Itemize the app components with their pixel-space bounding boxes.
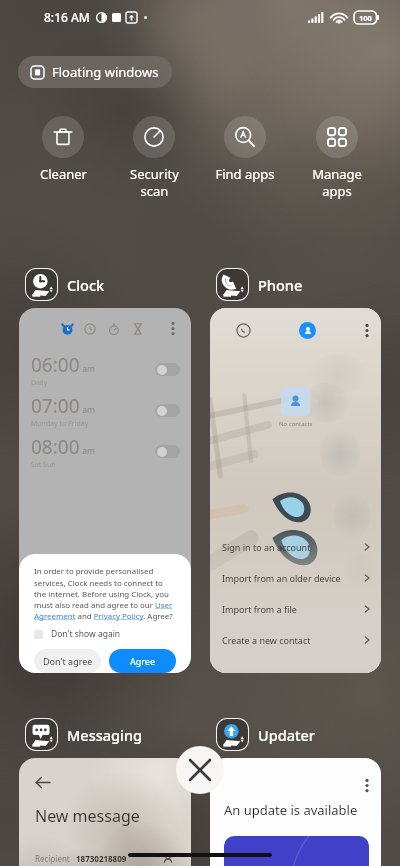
staticText: No contacts [279, 420, 313, 428]
staticText: Security scan [130, 165, 179, 200]
staticText: Monday to Friday [31, 419, 89, 429]
button[interactable]: Find apps [204, 116, 286, 183]
staticText: An update is available [224, 801, 358, 819]
staticText: Find apps [215, 165, 275, 183]
staticText: Updater [258, 725, 315, 745]
button[interactable]: 07:00 [19, 390, 191, 431]
button[interactable]: 06:00 [19, 349, 191, 390]
button[interactable]: Import from an older device [210, 562, 381, 593]
staticText: Recipient [35, 853, 70, 864]
staticText: Don't agree [43, 655, 93, 667]
button[interactable] [155, 445, 180, 458]
button[interactable]: 06:00 [19, 308, 191, 673]
button[interactable]: Sign in to an account [210, 531, 381, 562]
staticText: 08:00 [31, 434, 80, 460]
staticText: New message [35, 805, 140, 827]
staticText: 100 [359, 13, 372, 23]
staticText: am [80, 445, 95, 457]
button[interactable]: Don't agree [34, 649, 101, 673]
staticText: 18730218809 [76, 853, 127, 864]
staticText: Sat Sun [31, 460, 56, 470]
staticText: Import from an older device [222, 572, 341, 584]
button[interactable]: An update is available [210, 758, 381, 866]
button[interactable] [155, 404, 180, 417]
staticText: Import from a file [222, 603, 297, 615]
staticText: Daily [31, 378, 48, 388]
staticText: Clock [67, 275, 105, 295]
staticText: Create a new contact [222, 634, 311, 646]
button[interactable]: Floating windows [18, 56, 172, 88]
button[interactable]: Updater [216, 718, 315, 751]
staticText: Floating windows [52, 63, 159, 81]
button[interactable]: Close all [176, 746, 224, 794]
staticText: Messaging [67, 725, 143, 745]
button[interactable]: Phone [216, 268, 303, 301]
staticText: Sign in to an account [222, 541, 311, 553]
staticText: 07:00 [31, 393, 80, 419]
button[interactable]: Cleaner [22, 116, 104, 183]
button[interactable]: No contacts [210, 308, 381, 673]
staticText: In order to provide personalised service… [34, 566, 176, 621]
button[interactable]: Messaging [25, 718, 143, 751]
staticText: Manage apps [312, 165, 362, 200]
staticText: 8:16 AM [44, 9, 90, 25]
button[interactable]: Manage apps [296, 116, 378, 200]
button[interactable]: Security scan [113, 116, 195, 200]
staticText: Agree [130, 655, 155, 667]
button[interactable]: Agree [109, 649, 176, 673]
button[interactable]: Clock [25, 268, 105, 301]
staticText: am [80, 363, 95, 375]
button[interactable]: Create a new contact [210, 624, 381, 655]
button[interactable]: Import from a file [210, 593, 381, 624]
button[interactable]: New message [19, 758, 191, 866]
staticText: 06:00 [31, 352, 80, 378]
staticText: am [80, 404, 95, 416]
staticText: Don't show again [51, 628, 121, 640]
button[interactable] [155, 363, 180, 376]
staticText: Phone [258, 275, 303, 295]
button[interactable]: 08:00 [19, 431, 191, 472]
staticText: Cleaner [40, 165, 87, 183]
